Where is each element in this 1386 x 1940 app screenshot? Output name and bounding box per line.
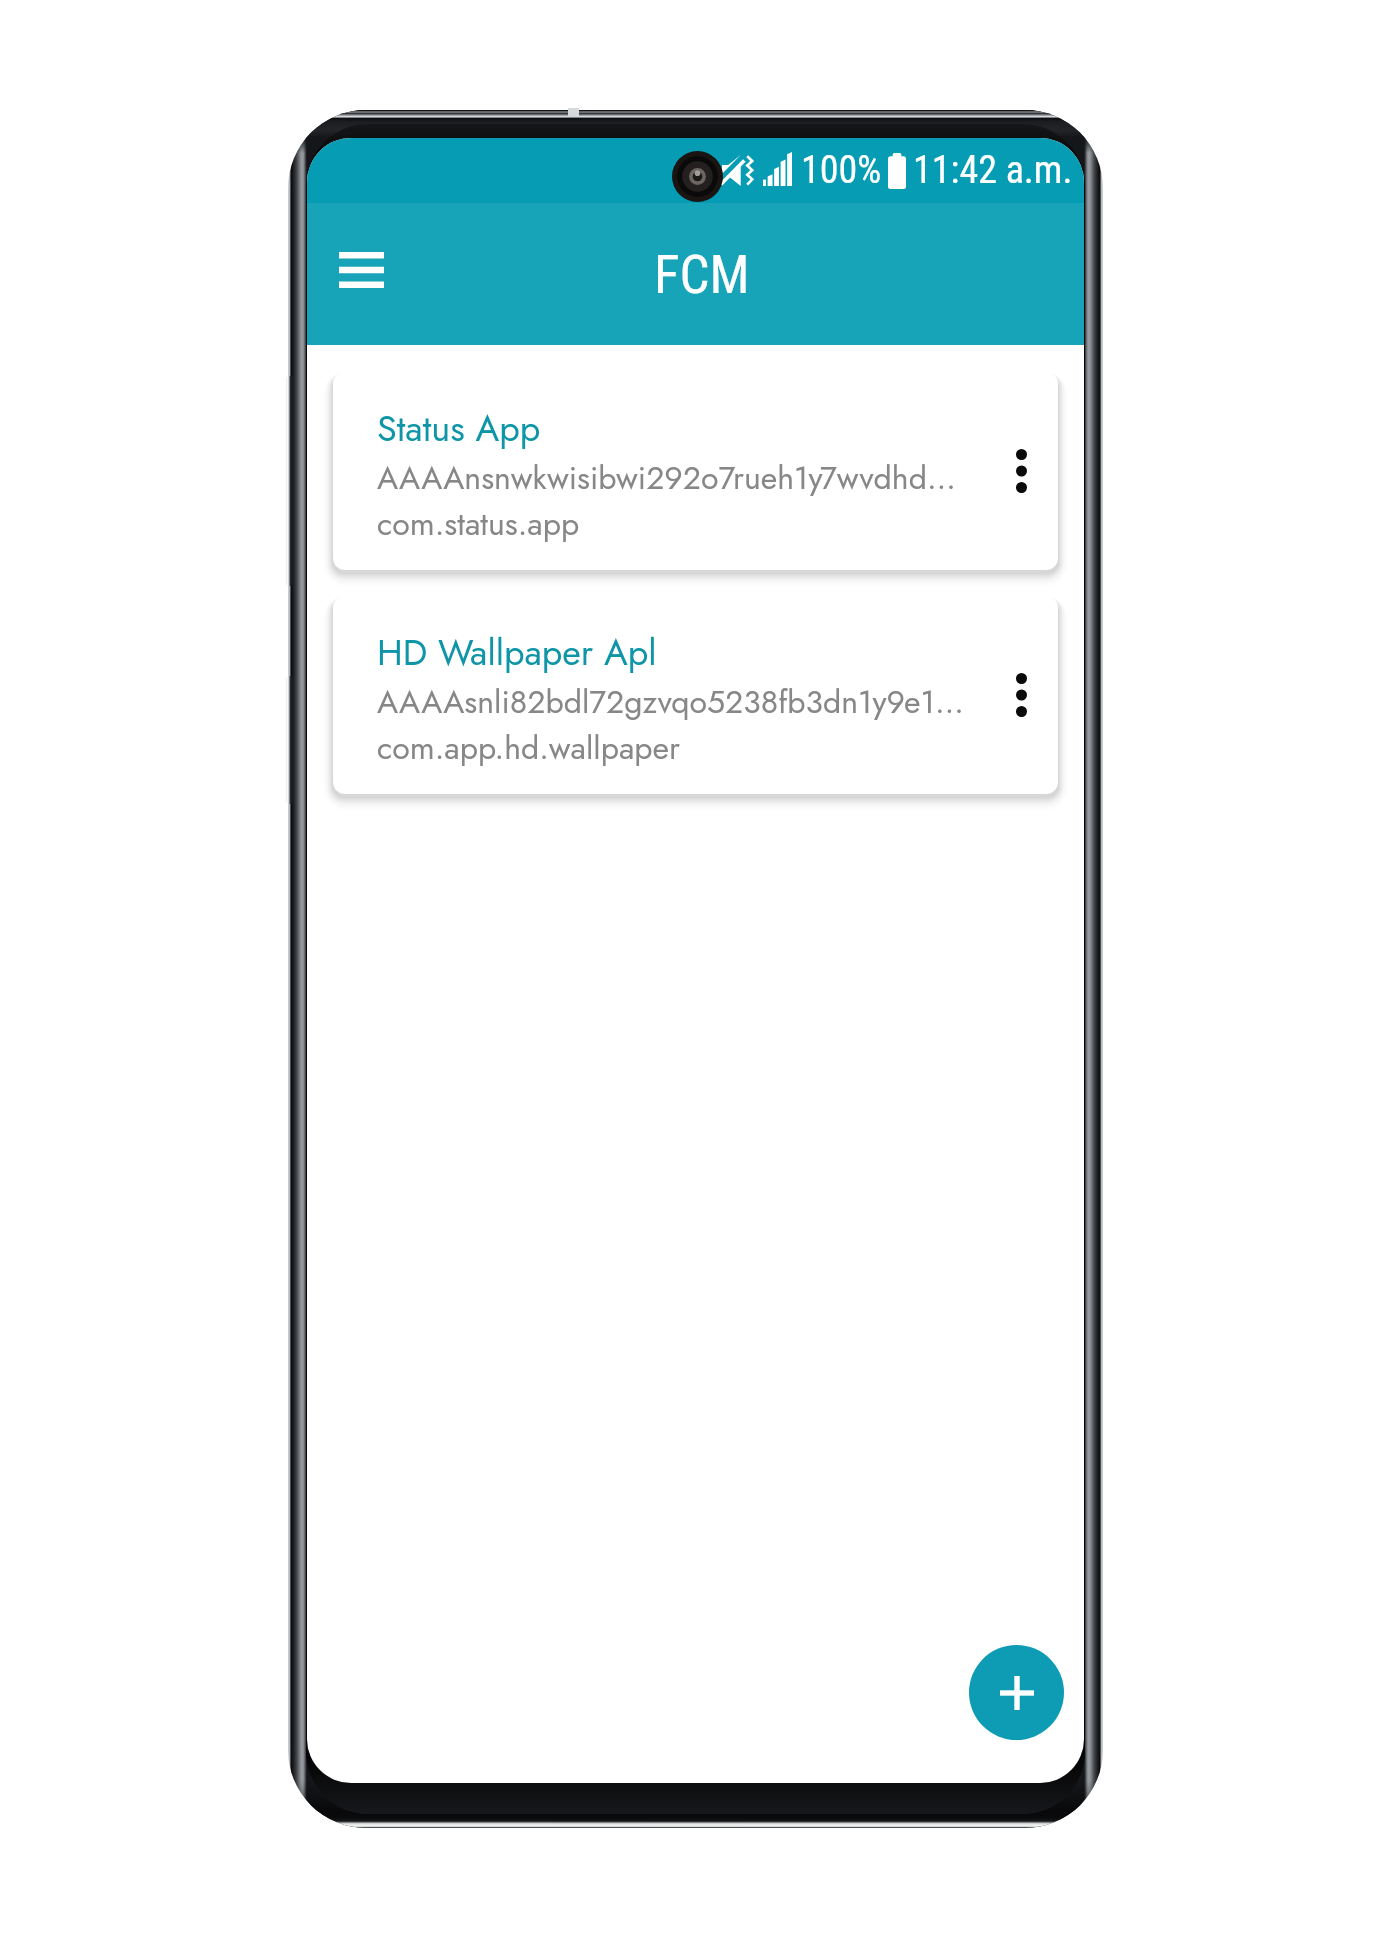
button[interactable]: Add	[969, 1645, 1064, 1740]
button[interactable]: More options	[987, 661, 1055, 729]
staticText: Status App	[377, 402, 541, 454]
staticText: FCM	[654, 244, 750, 306]
staticText: AAAAsnli82bdl72gzvqo5238fb3dn1y9e1…	[377, 679, 977, 725]
button[interactable]: More options	[987, 437, 1055, 505]
staticText: HD Wallpaper Apl	[377, 626, 657, 678]
staticText: AAAAnsnwkwisibwi292o7rueh1y7wvdhd…	[377, 455, 977, 501]
staticText: com.app.hd.wallpaper	[377, 725, 681, 771]
button[interactable]: Open navigation menu	[327, 248, 395, 292]
button[interactable]: Status App	[333, 372, 1058, 570]
staticText: 100%	[801, 148, 882, 193]
staticText: 11:42 a.m.	[913, 148, 1073, 193]
button[interactable]: HD Wallpaper Apl	[333, 596, 1058, 794]
staticText: com.status.app	[377, 501, 580, 547]
